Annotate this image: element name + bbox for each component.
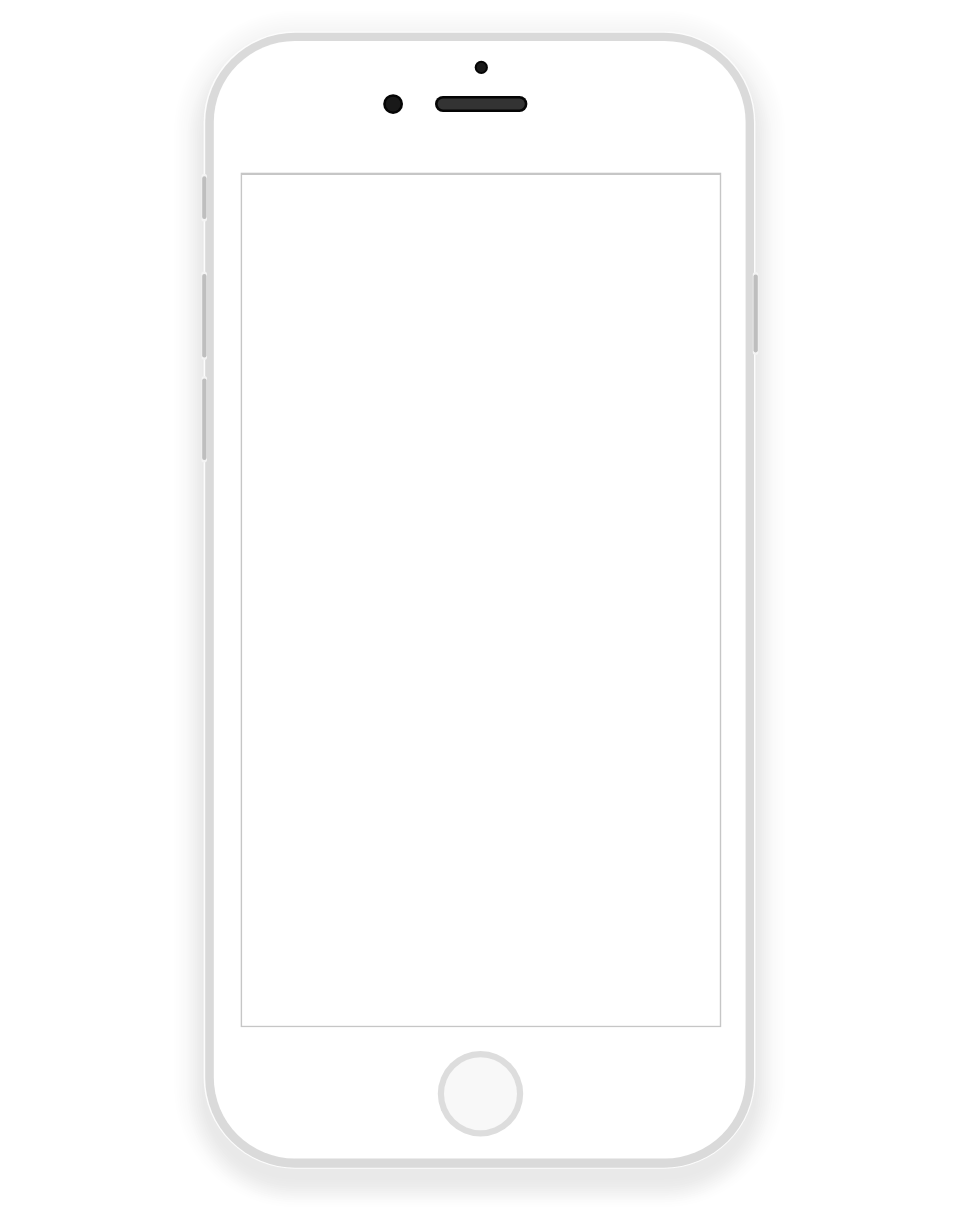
button[interactable]: Home button	[438, 1051, 523, 1136]
button[interactable]: Power button	[750, 274, 762, 352]
button[interactable]: Volume down	[198, 378, 210, 460]
button[interactable]: Volume up	[198, 274, 210, 358]
button[interactable]: Ring silent switch	[198, 176, 210, 219]
